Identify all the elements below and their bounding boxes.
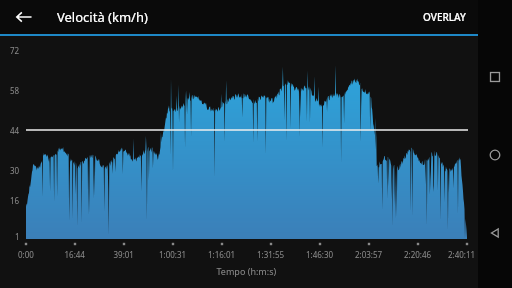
button[interactable]: Back (478, 216, 512, 250)
button[interactable] (408, 2, 474, 32)
button[interactable]: Home (478, 138, 512, 172)
button[interactable]: Back (10, 3, 38, 31)
button[interactable]: Recents (478, 60, 512, 94)
